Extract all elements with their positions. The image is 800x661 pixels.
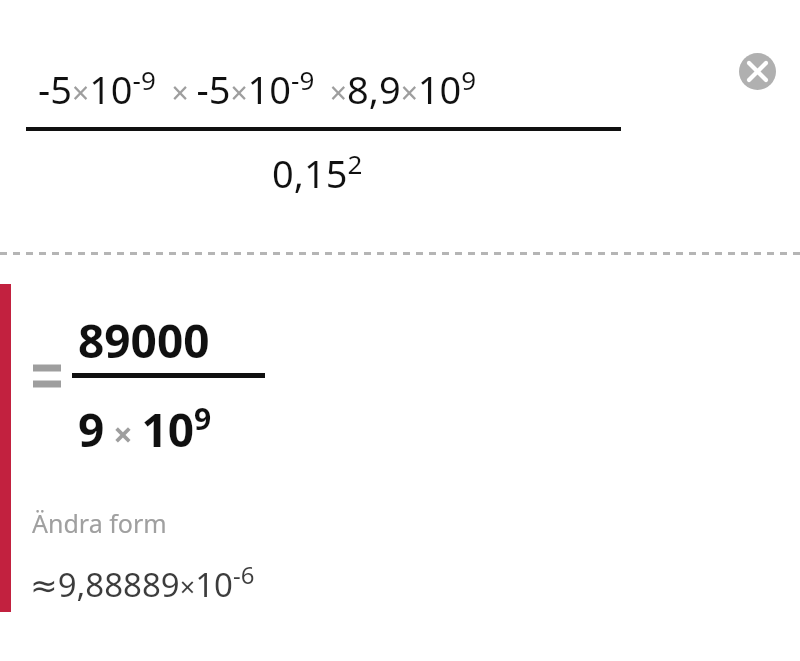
button[interactable]: Ändra form	[32, 506, 167, 540]
staticText: 0,152	[272, 146, 363, 199]
staticText: -5×10-9 × -5×10-9 ×8,9×109	[38, 62, 477, 115]
staticText: 9 × 109	[78, 398, 212, 461]
button[interactable]: Close	[739, 53, 776, 90]
staticText: 89000	[78, 309, 210, 372]
staticText: ≈9,88889×10-6	[30, 558, 255, 607]
staticText: Ändra form	[32, 506, 167, 540]
